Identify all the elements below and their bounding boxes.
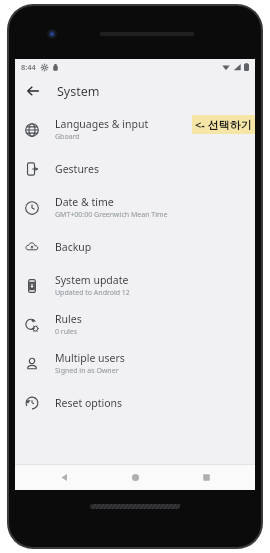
staticText: Reset options	[55, 396, 123, 410]
button[interactable]: Backup	[15, 227, 255, 266]
button[interactable]: Home	[113, 464, 157, 490]
staticText: Signed in as Owner	[55, 366, 119, 376]
staticText: Backup	[55, 240, 92, 254]
button[interactable]: Back	[19, 77, 47, 105]
button[interactable]: System update	[15, 266, 255, 305]
button[interactable]: Gestures	[15, 149, 255, 188]
button[interactable]: Rules	[15, 305, 255, 344]
staticText: Gestures	[55, 162, 99, 176]
button[interactable]: Recents	[184, 464, 228, 490]
staticText: Multiple users	[55, 351, 125, 365]
button[interactable]: Reset options	[15, 383, 255, 422]
staticText: GMT+00:00 Greenwich Mean Time	[55, 210, 168, 220]
staticText: System	[57, 83, 100, 100]
staticText: Gboard	[55, 132, 80, 142]
staticText: <- 선택하기	[195, 117, 252, 132]
staticText: Languages & input	[55, 117, 149, 131]
button[interactable]: Date & time	[15, 188, 255, 227]
button[interactable]: Languages & input	[15, 110, 255, 149]
staticText: 8:44	[21, 62, 36, 72]
button[interactable]: Multiple users	[15, 344, 255, 383]
button[interactable]: Back	[42, 464, 86, 490]
staticText: System update	[55, 273, 129, 287]
staticText: Updated to Android 12	[55, 288, 130, 298]
staticText: 0 rules	[55, 327, 78, 337]
staticText: Rules	[55, 312, 82, 326]
staticText: Date & time	[55, 195, 114, 209]
